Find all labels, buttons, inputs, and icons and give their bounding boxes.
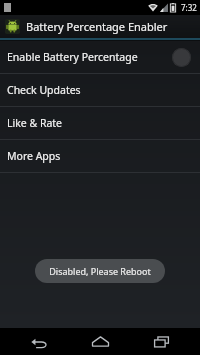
staticText: Like & Rate: [7, 116, 191, 130]
button[interactable]: Enable Battery Percentage: [0, 41, 200, 73]
button[interactable]: Recent apps: [139, 328, 183, 355]
staticText: Battery Percentage Enabler: [26, 19, 168, 34]
button[interactable]: Like & Rate: [0, 107, 200, 139]
staticText: Disabled, Please Reboot: [49, 265, 151, 277]
staticText: Check Updates: [7, 83, 191, 97]
button[interactable]: Home: [78, 328, 122, 355]
staticText: 7:32: [181, 2, 197, 13]
button[interactable]: Toggle battery percentage: [172, 48, 191, 67]
button[interactable]: More Apps: [0, 140, 200, 172]
staticText: More Apps: [7, 149, 191, 163]
button[interactable]: Check Updates: [0, 74, 200, 106]
button[interactable]: Back: [17, 328, 61, 355]
staticText: Enable Battery Percentage: [7, 50, 172, 64]
